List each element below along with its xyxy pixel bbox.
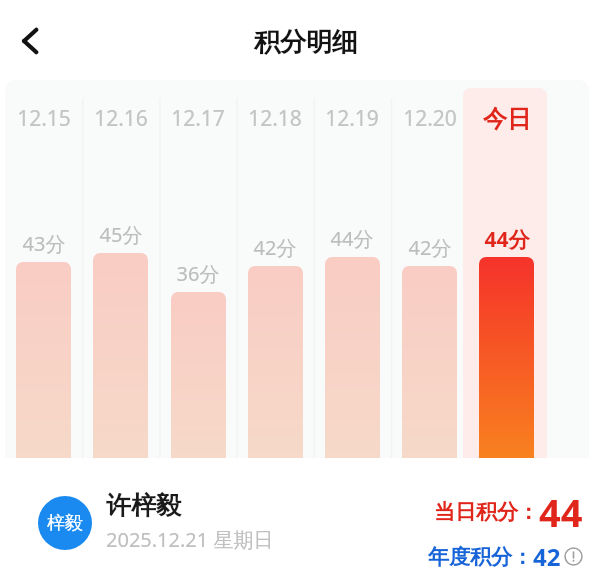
staticText: 今日 — [457, 104, 557, 134]
button[interactable]: Back — [10, 18, 56, 64]
button[interactable] — [479, 257, 534, 458]
staticText: 梓毅 — [38, 512, 92, 535]
staticText: 42分 — [380, 234, 480, 261]
button[interactable]: 当日积分： — [378, 486, 583, 573]
staticText: 42 — [533, 540, 561, 573]
staticText: 12.20 — [380, 104, 480, 133]
staticText: 12.19 — [302, 104, 402, 133]
button[interactable] — [16, 262, 71, 458]
staticText: 44分 — [457, 225, 557, 254]
staticText: 36分 — [148, 260, 248, 287]
button[interactable]: 梓毅 — [38, 496, 92, 550]
staticText: 44 — [539, 486, 583, 538]
button[interactable] — [248, 266, 303, 458]
staticText: 2025.12.21 星期日 — [106, 526, 274, 553]
button[interactable] — [325, 257, 380, 458]
staticText: 当日积分： — [434, 499, 539, 525]
staticText: 积分明细 — [0, 26, 612, 59]
staticText: 12.15 — [5, 104, 94, 133]
button[interactable] — [402, 266, 457, 458]
staticText: 44分 — [302, 225, 402, 252]
button[interactable]: Info — [564, 547, 583, 566]
staticText: 许梓毅 — [106, 490, 181, 521]
button[interactable] — [93, 253, 148, 458]
staticText: 45分 — [71, 221, 171, 248]
staticText: 43分 — [5, 230, 94, 257]
button[interactable] — [171, 292, 226, 458]
staticText: 42分 — [225, 234, 325, 261]
button[interactable]: 许梓毅 — [106, 490, 366, 553]
staticText: 12.18 — [225, 104, 325, 133]
staticText: 12.17 — [148, 104, 248, 133]
staticText: 12.16 — [71, 104, 171, 133]
staticText: 年度积分： — [428, 544, 533, 570]
